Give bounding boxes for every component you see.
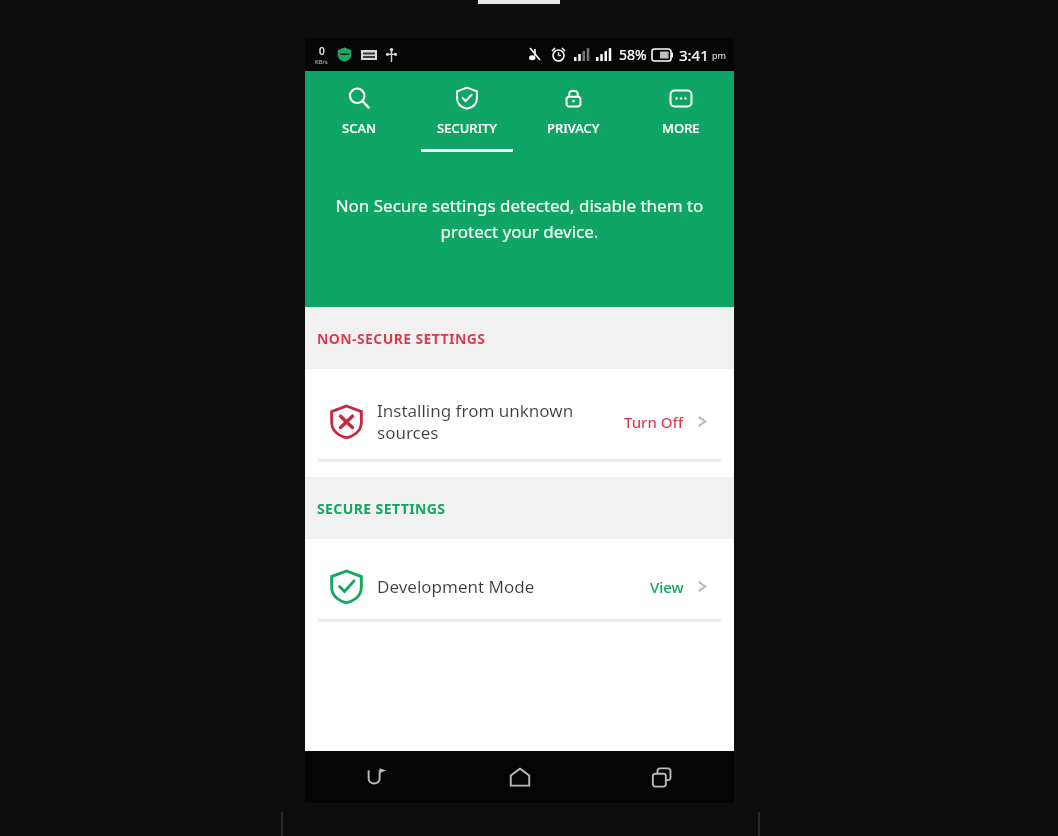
button[interactable]: PRIVACY: [520, 83, 627, 152]
button[interactable]: Installing from unknown sources: [317, 384, 722, 459]
button[interactable]: Recent apps: [591, 751, 734, 803]
other: Open View: [696, 580, 709, 593]
staticText: KB/s: [315, 58, 328, 66]
button[interactable]: SCAN: [305, 83, 413, 152]
staticText: 58%: [619, 45, 647, 64]
button[interactable]: SECURITY: [413, 83, 520, 152]
staticText: 0: [319, 44, 325, 58]
staticText: Turn Off: [624, 412, 684, 432]
staticText: pm: [712, 49, 726, 61]
staticText: NON-SECURE SETTINGS: [317, 329, 486, 348]
staticText: PRIVACY: [547, 119, 600, 137]
staticText: SECURE SETTINGS: [317, 499, 446, 518]
staticText: 3:41: [679, 45, 709, 65]
button[interactable]: Back: [305, 751, 448, 803]
button[interactable]: Development Mode: [317, 554, 722, 619]
staticText: SECURITY: [437, 119, 497, 137]
staticText: Installing from unknown sources: [377, 399, 624, 444]
staticText: Non Secure settings detected, disable th…: [327, 194, 712, 243]
button[interactable]: Home: [448, 751, 591, 803]
button[interactable]: MORE: [627, 83, 734, 152]
staticText: Development Mode: [377, 575, 650, 598]
staticText: View: [650, 577, 684, 597]
staticText: SCAN: [342, 119, 377, 137]
other: Open Turn Off: [696, 415, 709, 428]
staticText: MORE: [662, 119, 700, 137]
